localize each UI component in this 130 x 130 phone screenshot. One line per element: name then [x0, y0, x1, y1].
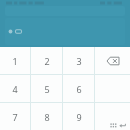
other: Account: [8, 29, 13, 34]
staticText: 2: [44, 55, 50, 67]
staticText: 6: [76, 83, 82, 95]
button[interactable]: 2: [31, 47, 62, 74]
button[interactable]: 5: [31, 75, 62, 102]
staticText: 7: [12, 111, 18, 123]
button[interactable]: 4: [0, 75, 30, 102]
button[interactable]: 9: [63, 103, 94, 130]
staticText: 1: [12, 55, 18, 67]
button[interactable]: 8: [31, 103, 62, 130]
staticText: 4: [12, 83, 18, 95]
button[interactable]: 6: [63, 75, 94, 102]
button[interactable]: Backspace: [95, 47, 130, 74]
button[interactable]: 7: [0, 103, 30, 130]
button[interactable]: 3: [63, 47, 94, 74]
staticText: 9: [76, 111, 82, 123]
staticText: 3: [76, 55, 82, 67]
staticText: 5: [44, 83, 50, 95]
button[interactable]: Enter: [95, 103, 130, 130]
staticText: 8: [44, 111, 50, 123]
button[interactable]: Account: [5, 18, 125, 45]
button[interactable]: 1: [0, 47, 30, 74]
